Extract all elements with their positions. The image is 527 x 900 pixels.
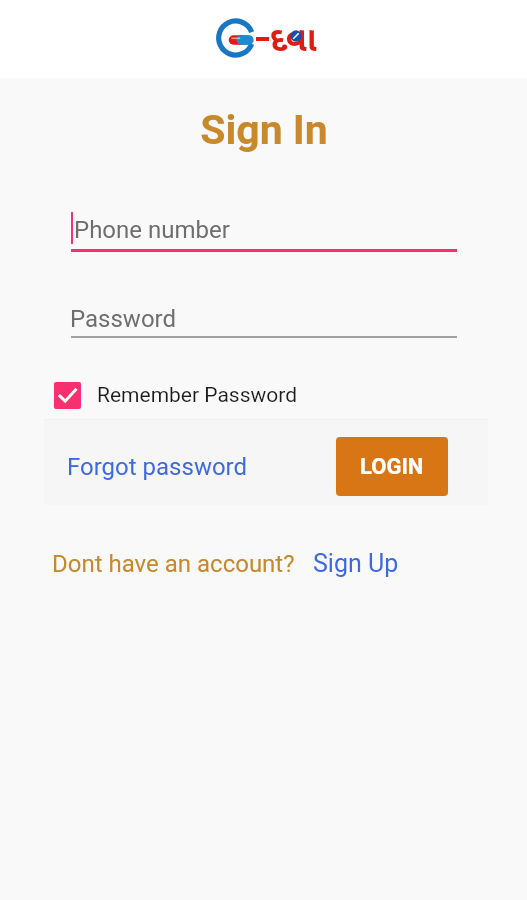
staticText: દવા [270,15,317,61]
staticText: Remember Password [97,383,298,408]
other: G-Dava logo [215,15,259,63]
staticText: Password [70,305,177,333]
staticText: Sign In [200,106,328,154]
button[interactable]: Phone number [71,205,457,252]
button[interactable]: Remember Password [54,378,298,412]
staticText: Sign Up [313,549,399,578]
button[interactable]: Password [71,294,457,338]
staticText: Phone number [74,216,230,244]
button[interactable]: Sign Up [301,536,387,576]
staticText: Forgot password [67,453,248,481]
button[interactable]: LOGIN [336,437,448,496]
staticText: LOGIN [360,454,424,480]
button[interactable]: Forgot password [60,447,248,487]
staticText: Dont have an account? [52,550,295,578]
